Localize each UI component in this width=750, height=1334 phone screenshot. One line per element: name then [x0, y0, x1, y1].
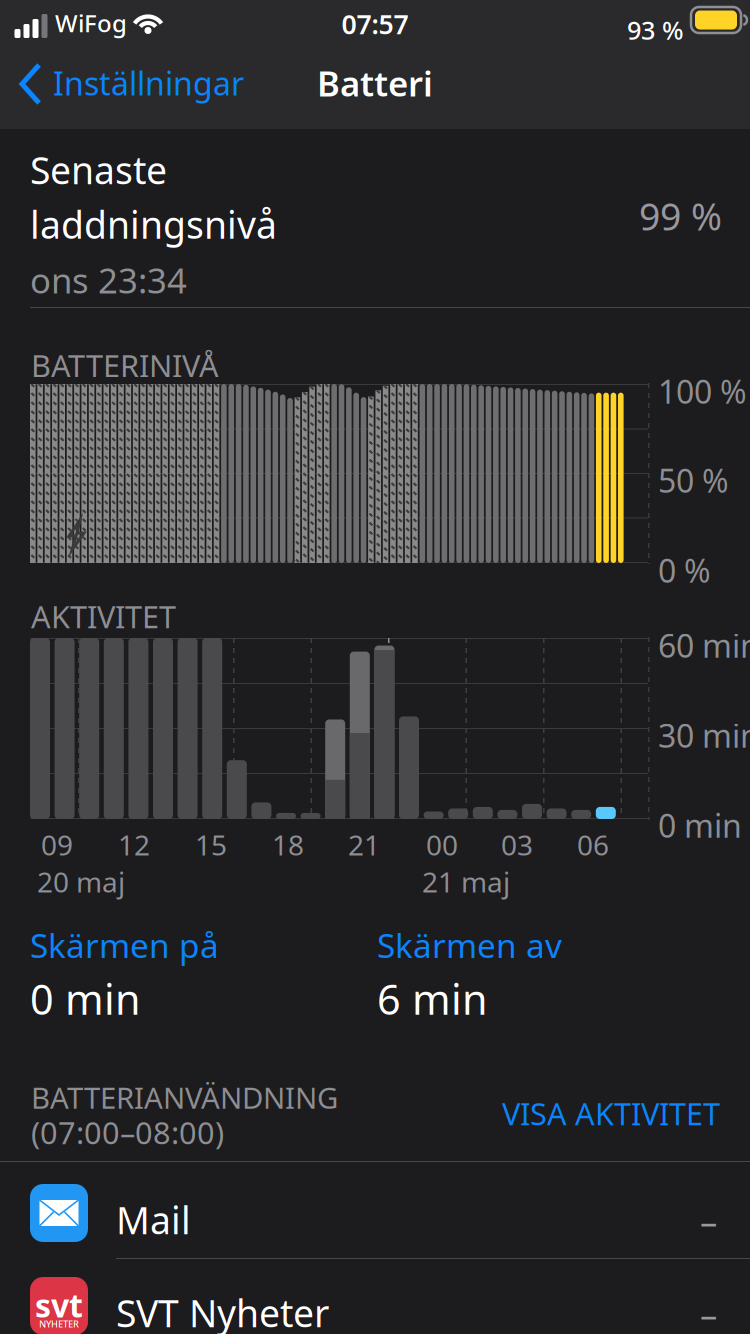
button[interactable]: VISA AKTIVITET: [494, 1085, 728, 1142]
staticText: 18: [272, 826, 304, 863]
button[interactable]: Skärmen på: [30, 923, 219, 1026]
staticText: WiFog: [55, 7, 127, 39]
staticText: –: [700, 1291, 717, 1334]
staticText: 12: [118, 826, 150, 863]
staticText: 6 min: [377, 971, 488, 1026]
staticText: laddningsnivå: [30, 200, 277, 249]
staticText: 21: [348, 826, 380, 863]
button[interactable]: Inställningar: [0, 58, 256, 108]
staticText: 03: [501, 826, 533, 863]
staticText: 100 %: [658, 370, 747, 412]
staticText: 20 maj: [37, 863, 125, 900]
staticText: SVT Nyheter: [116, 1288, 329, 1334]
staticText: Batteri: [317, 60, 433, 106]
staticText: Inställningar: [53, 62, 244, 104]
staticText: 50 %: [658, 459, 729, 501]
staticText: BATTERINIVÅ: [31, 345, 219, 386]
staticText: 21 maj: [422, 863, 510, 900]
staticText: 30 min: [658, 714, 750, 756]
staticText: svt: [35, 1284, 83, 1326]
staticText: BATTERIANVÄNDNING: [31, 1078, 338, 1117]
staticText: –: [700, 1198, 717, 1244]
staticText: Skärmen på: [30, 923, 219, 967]
staticText: 15: [195, 826, 227, 863]
staticText: ons 23:34: [30, 257, 187, 303]
button[interactable]: svt: [0, 1258, 750, 1331]
staticText: 60 min: [658, 624, 750, 666]
staticText: VISA AKTIVITET: [502, 1093, 720, 1134]
staticText: 99 %: [639, 191, 722, 241]
staticText: NYHETER: [39, 1318, 79, 1330]
staticText: 07:57: [341, 6, 408, 42]
staticText: 06: [577, 826, 609, 863]
staticText: 0 min: [658, 804, 742, 846]
button[interactable]: Skärmen av: [377, 923, 562, 1026]
staticText: 93 %: [627, 13, 684, 47]
staticText: 0 min: [30, 971, 141, 1026]
staticText: Skärmen av: [377, 923, 562, 967]
staticText: AKTIVITET: [31, 596, 176, 637]
staticText: (07:00–08:00): [31, 1112, 224, 1153]
button[interactable]: Mail: [0, 1165, 750, 1261]
staticText: Senaste: [30, 145, 167, 195]
staticText: 09: [41, 826, 73, 863]
staticText: Mail: [116, 1195, 191, 1245]
staticText: 0 %: [658, 549, 711, 591]
staticText: 00: [426, 826, 458, 863]
